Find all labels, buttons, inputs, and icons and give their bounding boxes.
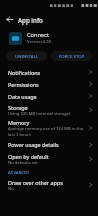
button[interactable]: UNINSTALL bbox=[6, 51, 47, 61]
staticText: Average memory use of 124 MB in the last… bbox=[8, 126, 88, 137]
staticText: Storage bbox=[8, 104, 28, 111]
staticText: Notifications bbox=[8, 69, 41, 76]
button[interactable]: Back bbox=[0, 11, 18, 28]
button[interactable]: Permissions bbox=[0, 78, 98, 90]
staticText: ADVANCED bbox=[8, 170, 30, 175]
button[interactable]: Memory bbox=[0, 118, 98, 138]
button[interactable]: Data usage bbox=[0, 90, 98, 102]
staticText: Connect bbox=[27, 31, 49, 39]
staticText: Open by default bbox=[8, 153, 49, 160]
button[interactable]: Draw over other apps bbox=[0, 177, 98, 193]
staticText: Data usage bbox=[8, 93, 37, 100]
staticText: Memory bbox=[8, 119, 30, 126]
staticText: Power usage details bbox=[8, 141, 59, 148]
staticText: Using 235 MB (internal storage) bbox=[8, 111, 71, 117]
staticText: FORCE STOP bbox=[59, 53, 85, 59]
staticText: UNINSTALL bbox=[15, 53, 39, 59]
staticText: Version 4.30 bbox=[27, 39, 52, 45]
button[interactable]: FORCE STOP bbox=[51, 51, 92, 61]
button[interactable]: Power usage details bbox=[0, 138, 98, 151]
staticText: Draw over other apps bbox=[8, 179, 63, 186]
button[interactable]: Open by default bbox=[0, 151, 98, 167]
staticText: No bbox=[8, 186, 14, 192]
staticText: No defaults set bbox=[8, 160, 38, 166]
staticText: Permissions bbox=[8, 81, 39, 88]
button[interactable]: Notifications bbox=[0, 66, 98, 78]
button[interactable]: Storage bbox=[0, 102, 98, 118]
staticText: App info bbox=[18, 16, 43, 24]
